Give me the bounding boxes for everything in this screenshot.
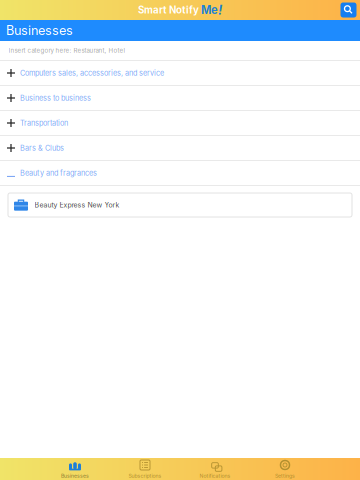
staticText: Insert category here: Restaurant, Hotel: [8, 47, 124, 54]
staticText: !: [218, 2, 222, 18]
staticText: Businesses: [6, 23, 73, 38]
button[interactable]: Beauty Express New York: [8, 193, 352, 217]
button[interactable]: Bars & Clubs: [0, 136, 360, 161]
button[interactable]: Beauty and fragrances: [0, 161, 360, 186]
button[interactable]: Settings: [250, 458, 320, 480]
button[interactable]: Businesses: [40, 458, 110, 480]
button[interactable]: Computers sales, accessories, and servic…: [0, 61, 360, 86]
staticText: Beauty Express New York: [34, 201, 119, 209]
button[interactable]: Search: [340, 2, 356, 17]
staticText: Me: [201, 3, 218, 17]
button[interactable]: Transportation: [0, 111, 360, 136]
staticText: Transportation: [20, 119, 68, 127]
staticText: Computers sales, accessories, and servic…: [20, 69, 164, 77]
button[interactable]: Notifications: [180, 458, 250, 480]
button[interactable]: Business to business: [0, 86, 360, 111]
staticText: Bars & Clubs: [20, 144, 64, 152]
staticText: Businesses: [61, 473, 89, 479]
staticText: Business to business: [20, 94, 91, 102]
staticText: Smart Notify: [138, 4, 201, 16]
staticText: Subscriptions: [128, 473, 161, 479]
staticText: Notifications: [199, 473, 230, 479]
staticText: Settings: [275, 473, 295, 479]
staticText: Beauty and fragrances: [20, 169, 97, 177]
button[interactable]: Subscriptions: [110, 458, 180, 480]
